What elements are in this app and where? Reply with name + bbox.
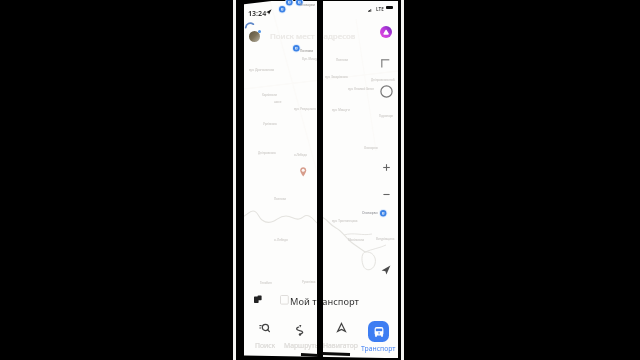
staticText: вул. Ревуцького [294,107,317,111]
staticText: вул. Тростянецька [332,219,358,223]
staticText: Позняки [336,58,349,62]
staticText: Позняки [300,49,314,53]
staticText: вул. Мишуги [332,108,350,112]
button[interactable]: Alice assistant [380,26,392,38]
staticText: Вигурівщина [376,237,395,241]
staticText: шосе [274,100,282,104]
staticText: Харківське [262,93,278,97]
staticText: Вул. Мишуги [302,57,320,61]
staticText: LTE [376,6,384,12]
button[interactable]: Zoom in [383,164,390,171]
staticText: Поиск [255,341,276,350]
staticText: вул. Драгоманова [249,68,275,72]
button[interactable]: Поиск [246,319,282,355]
button[interactable]: Compass [380,85,393,98]
button[interactable]: Маршруты [282,319,320,355]
staticText: Микільська [348,238,365,242]
staticText: Позняки [274,197,287,201]
button[interactable]: Поиск мест и адресов [264,25,394,45]
staticText: Поиск мест и адресов [270,31,356,42]
staticText: Дніпровська [258,151,276,155]
staticText: Осокорки [300,3,315,7]
button[interactable]: Map layers [380,58,391,69]
button[interactable]: Profile [249,31,260,42]
staticText: Осокорки [364,146,378,150]
staticText: Маршруты [284,341,320,350]
staticText: вул. Княжий Затон [348,87,374,91]
staticText: Навигатор [323,341,358,350]
staticText: вул. Захарівська [325,75,348,79]
staticText: 13:24 [248,8,267,18]
staticText: о. Лебедя [274,238,288,242]
button[interactable]: Транспорт [360,319,398,355]
button[interactable] [274,289,374,307]
staticText: Осокорки [362,210,378,214]
button[interactable]: Навигатор [322,319,360,355]
staticText: Мой транспорт [290,295,359,308]
staticText: Гідропарк [379,114,394,118]
button[interactable]: Bookmarks [254,295,263,304]
staticText: Урлівська [263,122,277,126]
staticText: Тельбин [260,281,272,285]
staticText: Дніпровська наб. [371,78,396,82]
button[interactable]: My location [381,265,391,275]
staticText: Русанівка [302,280,316,284]
staticText: о.Лебедя [294,153,307,157]
staticText: Транспорт [361,344,396,353]
button[interactable]: Zoom out [383,191,390,198]
